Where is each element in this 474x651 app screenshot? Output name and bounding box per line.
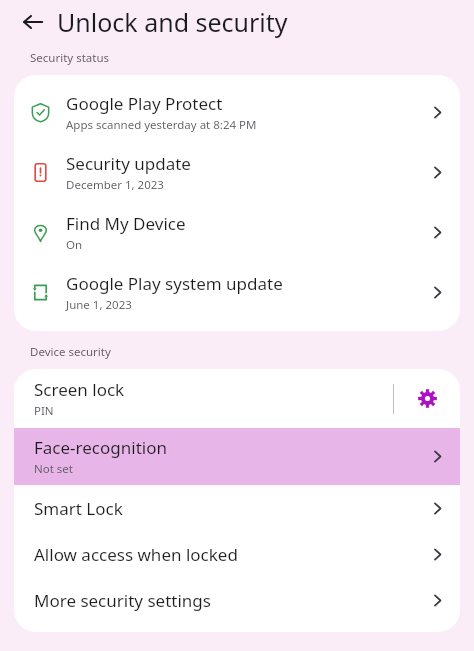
staticText: Device security xyxy=(30,344,111,360)
staticText: On xyxy=(66,237,83,253)
staticText: June 1, 2023 xyxy=(66,297,132,313)
button[interactable]: Smart Lock xyxy=(14,485,460,531)
staticText: Google Play system update xyxy=(66,272,283,295)
staticText: Security update xyxy=(66,152,191,175)
staticText: Apps scanned yesterday at 8:24 PM xyxy=(66,117,257,133)
staticText: Not set xyxy=(34,461,73,477)
staticText: Allow access when locked xyxy=(34,543,414,566)
button[interactable]: Screen lock settings xyxy=(394,369,460,428)
button[interactable]: Allow access when locked xyxy=(14,531,460,577)
button[interactable]: Find My Device xyxy=(14,202,460,262)
staticText: Unlock and security xyxy=(57,5,288,39)
button[interactable]: Google Play Protect xyxy=(14,82,460,142)
button[interactable]: Face-recognition xyxy=(14,428,460,485)
button[interactable]: Back xyxy=(18,7,48,37)
staticText: Face-recognition xyxy=(34,436,167,459)
staticText: Google Play Protect xyxy=(66,92,223,115)
staticText: Screen lock xyxy=(34,378,125,401)
button[interactable]: Google Play system update xyxy=(14,262,460,322)
staticText: Smart Lock xyxy=(34,497,414,520)
staticText: December 1, 2023 xyxy=(66,177,164,193)
staticText: Security status xyxy=(30,50,110,66)
button[interactable]: More security settings xyxy=(14,577,460,623)
staticText: More security settings xyxy=(34,589,414,612)
staticText: Find My Device xyxy=(66,212,186,235)
staticText: PIN xyxy=(34,403,54,419)
button[interactable]: Screen lock xyxy=(14,369,393,428)
button[interactable]: Security update xyxy=(14,142,460,202)
